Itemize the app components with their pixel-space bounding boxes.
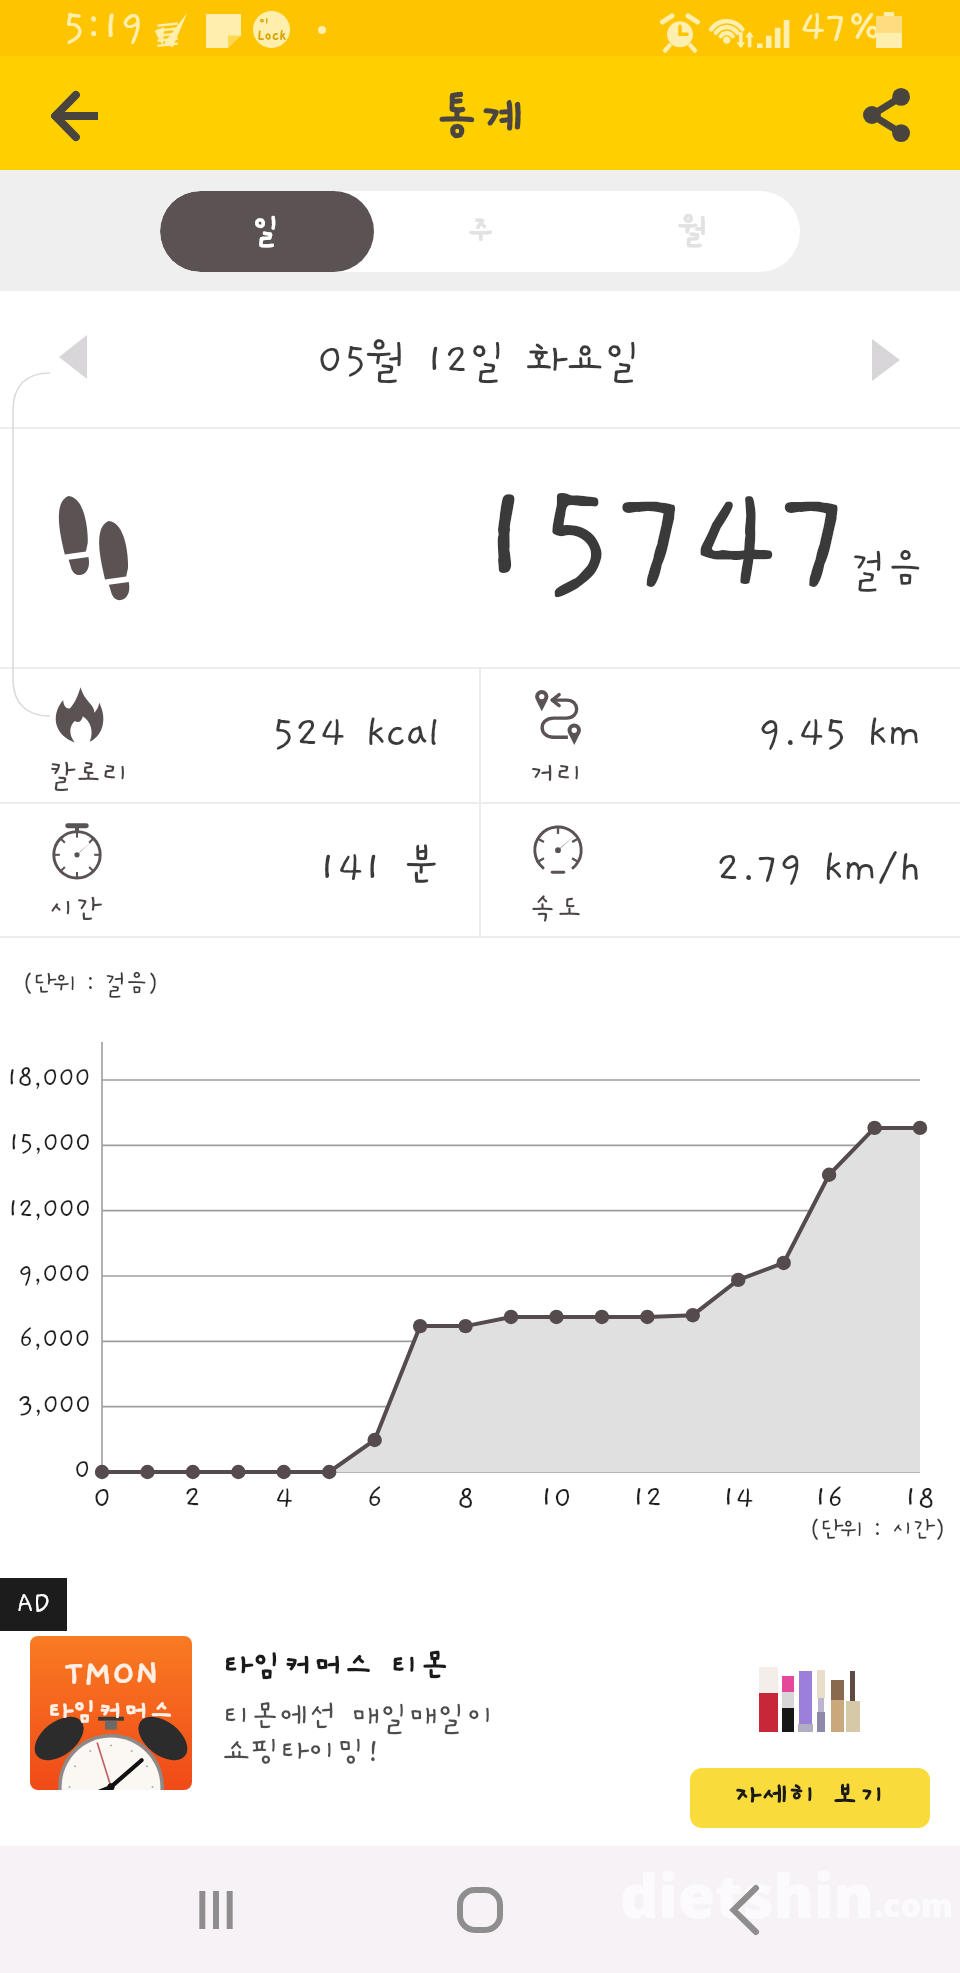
staticText: 0 (74, 1455, 91, 1485)
staticText: 쇼핑타이밍! (222, 1734, 382, 1769)
button[interactable]: 자세히 보기 (690, 1768, 930, 1828)
button[interactable]: Next day (864, 337, 908, 381)
staticText: 6,000 (19, 1324, 91, 1354)
staticText: 2.79 km/h (716, 844, 922, 891)
button[interactable]: Recent apps (168, 1862, 264, 1958)
staticText: 속도 (529, 893, 584, 926)
staticText: Lock (257, 27, 287, 44)
staticText: 자세히 보기 (733, 1779, 887, 1813)
staticText: 2 (184, 1482, 202, 1515)
staticText: 12,000 (7, 1194, 91, 1224)
button[interactable]: 15747 (0, 429, 960, 667)
button[interactable]: Share (851, 78, 921, 148)
button[interactable]: Home (432, 1862, 528, 1958)
button[interactable]: Back (696, 1862, 792, 1958)
button[interactable]: Previous day (51, 337, 95, 381)
staticText: 0 (93, 1482, 112, 1515)
staticText: 524 kcal (272, 709, 441, 756)
staticText: 18 (904, 1482, 936, 1515)
button[interactable]: 월 (587, 191, 800, 272)
button[interactable]: 칼로리 (0, 669, 479, 802)
button[interactable]: AD (0, 1578, 960, 1846)
staticText: 141 분 (318, 844, 441, 891)
staticText: 16 (814, 1482, 844, 1515)
staticText: 05월 12일 화요일 (317, 336, 643, 383)
button[interactable]: 일 (160, 191, 374, 272)
staticText: .com (874, 1883, 953, 1927)
button[interactable]: Back (40, 78, 110, 148)
staticText: 통계 (434, 91, 526, 147)
button[interactable]: 시간 (0, 804, 479, 936)
staticText: 주 (466, 212, 496, 248)
staticText: 일 (252, 212, 282, 248)
staticText: (단위 : 걸음) (22, 970, 158, 998)
staticText: 티몬에선 매일매일이 (222, 1699, 496, 1734)
staticText: 15747 (474, 460, 854, 618)
button[interactable]: 속도 (481, 804, 960, 936)
staticText: 이 (259, 15, 270, 28)
staticText: 칼로리 (48, 758, 130, 791)
staticText: 4 (275, 1482, 294, 1515)
staticText: 10 (540, 1482, 573, 1515)
staticText: 6 (367, 1482, 383, 1515)
staticText: 시간 (48, 893, 103, 926)
staticText: 15,000 (8, 1128, 91, 1158)
staticText: 18,000 (6, 1063, 91, 1093)
staticText: 타임커머스 티몬 (222, 1648, 450, 1685)
staticText: 거리 (529, 758, 584, 791)
staticText: AD (17, 1588, 51, 1618)
staticText: 14 (722, 1482, 754, 1515)
staticText: 타임커머스 (47, 1696, 175, 1727)
staticText: 3,000 (18, 1390, 91, 1420)
staticText: (단위 : 시간) (809, 1516, 945, 1544)
staticText: 5:19 (63, 4, 145, 50)
staticText: 걸음 (850, 547, 924, 592)
staticText: 월 (679, 212, 709, 248)
button[interactable]: 거리 (481, 669, 960, 802)
staticText: 9,000 (18, 1259, 91, 1289)
staticText: TMON (64, 1654, 159, 1694)
staticText: 12 (632, 1482, 663, 1515)
staticText: 47% (800, 4, 883, 50)
staticText: 8 (457, 1482, 475, 1515)
staticText: dietshin (620, 1854, 874, 1936)
staticText: 9.45 km (758, 709, 922, 756)
